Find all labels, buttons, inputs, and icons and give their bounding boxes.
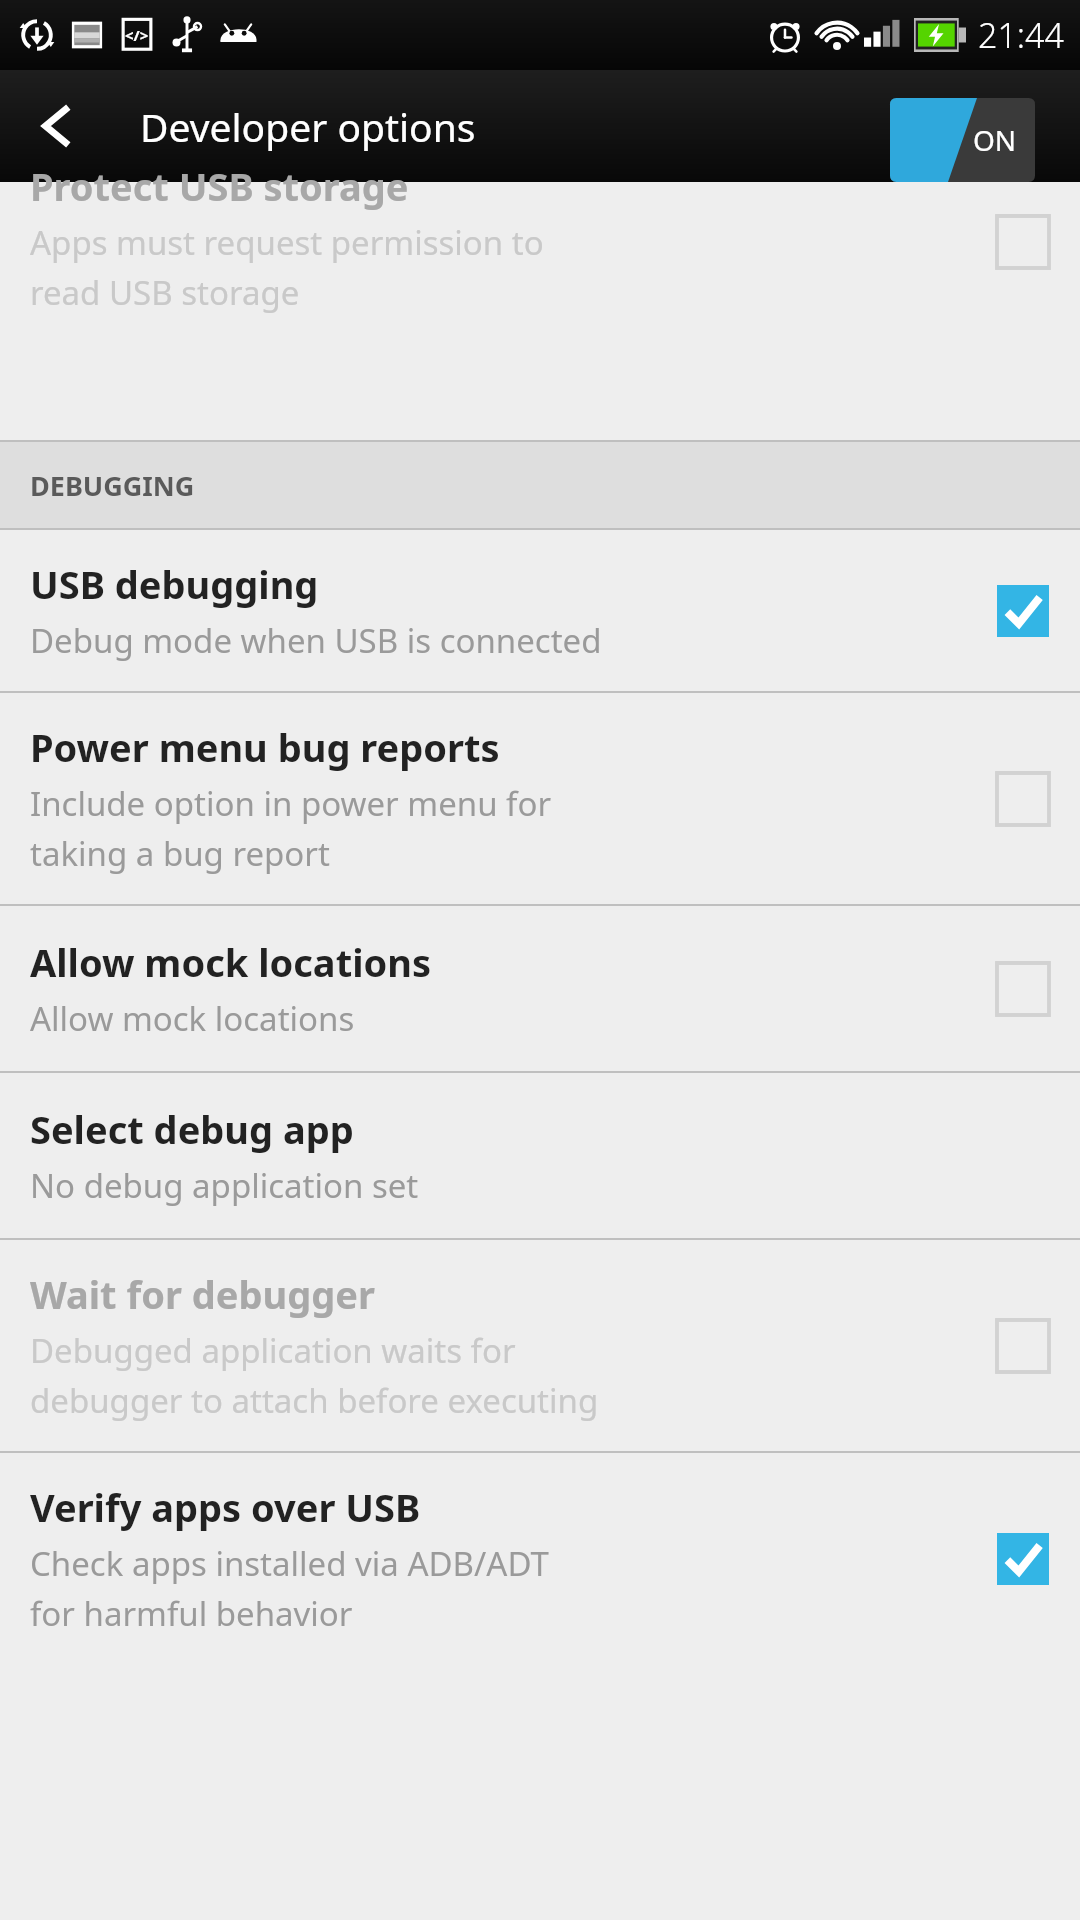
staticText: USB debugging bbox=[30, 558, 319, 610]
button[interactable]: Wait for debugger bbox=[0, 1240, 1080, 1451]
button[interactable]: Verify apps over USB bbox=[0, 1453, 1080, 1664]
button[interactable]: USB debugging bbox=[0, 530, 1080, 691]
staticText: Select debug app bbox=[30, 1103, 354, 1155]
staticText: Allow mock locations bbox=[30, 996, 355, 1041]
staticText: Apps must request permission to read USB… bbox=[30, 220, 544, 315]
button[interactable]: Allow mock locations bbox=[0, 906, 1080, 1071]
button[interactable]: Developer options on bbox=[890, 98, 1035, 182]
staticText: No debug application set bbox=[30, 1163, 419, 1208]
staticText: Allow mock locations bbox=[30, 936, 432, 988]
button[interactable]: Back bbox=[0, 70, 96, 182]
staticText: Check apps installed via ADB/ADT for har… bbox=[30, 1541, 549, 1636]
staticText: Debugged application waits for debugger … bbox=[30, 1328, 599, 1423]
button[interactable]: Power menu bug reports bbox=[0, 693, 1080, 904]
staticText: </> bbox=[125, 25, 149, 45]
button[interactable]: Select debug app bbox=[0, 1073, 1080, 1238]
staticText: Debug mode when USB is connected bbox=[30, 618, 602, 663]
staticText: Verify apps over USB bbox=[30, 1481, 421, 1533]
button[interactable]: Protect USB storage bbox=[0, 182, 1080, 440]
staticText: Include option in power menu for taking … bbox=[30, 781, 552, 876]
staticText: DEBUGGING bbox=[30, 467, 195, 504]
staticText: Power menu bug reports bbox=[30, 721, 500, 773]
staticText: 21:44 bbox=[978, 12, 1064, 58]
staticText: ON bbox=[973, 121, 1017, 159]
staticText: Developer options bbox=[140, 100, 476, 153]
staticText: Protect USB storage bbox=[30, 160, 409, 212]
staticText: Wait for debugger bbox=[30, 1268, 375, 1320]
